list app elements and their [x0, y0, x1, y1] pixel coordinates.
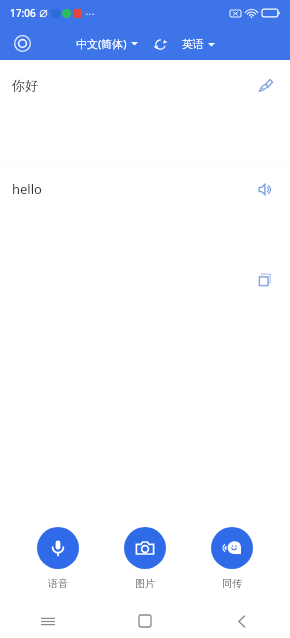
button[interactable]: 中文(简体)	[74, 33, 140, 54]
staticText: 英语	[182, 37, 204, 51]
staticText: hello	[12, 180, 252, 198]
staticText: 你好	[12, 77, 252, 93]
button[interactable]: 英语	[180, 34, 217, 54]
button[interactable]: Simultaneous	[203, 525, 261, 592]
staticText: 中文(简体)	[76, 36, 127, 51]
button[interactable]: Back	[193, 604, 290, 638]
staticText: 语音	[48, 577, 68, 590]
button[interactable]: Clear	[252, 72, 278, 98]
staticText: 同传	[222, 577, 242, 590]
staticText: 图片	[135, 577, 155, 590]
button[interactable]: Copy	[252, 267, 278, 293]
staticText: 17:06	[10, 6, 36, 20]
button[interactable]: Play audio	[252, 176, 278, 202]
button[interactable]: Voice	[29, 525, 87, 592]
button[interactable]: Home	[96, 604, 193, 638]
button[interactable]: Recent apps	[0, 604, 96, 638]
button[interactable]: Picture	[116, 525, 174, 592]
button[interactable]: Swap languages	[150, 34, 170, 54]
button[interactable]: Settings	[10, 31, 34, 55]
